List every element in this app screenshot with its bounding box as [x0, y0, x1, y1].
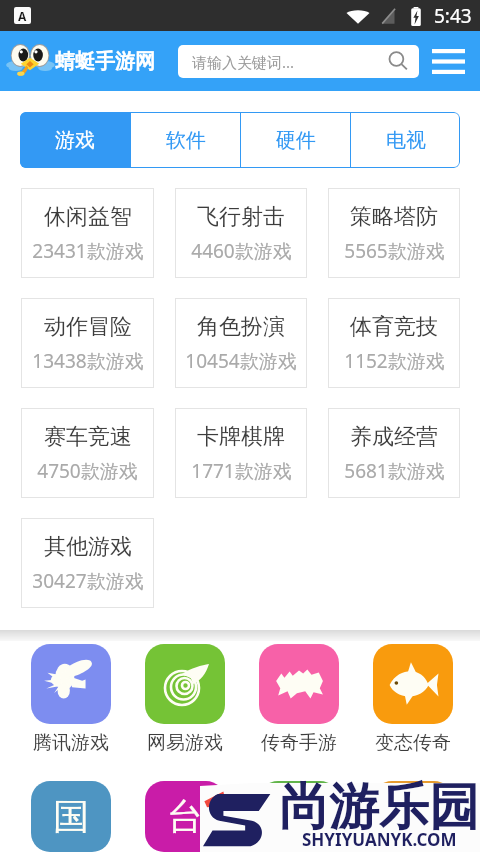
button[interactable]: 软件 — [131, 112, 240, 168]
button[interactable]: 休闲益智 — [21, 188, 154, 278]
staticText: 国 — [53, 794, 89, 839]
staticText: 角色扮演 — [197, 313, 285, 341]
staticText: 台 — [167, 794, 203, 839]
staticText: 30427款游戏 — [32, 568, 144, 594]
staticText: 硬件 — [276, 128, 316, 153]
staticText: 养成经营 — [350, 423, 438, 451]
button[interactable]: 变态传奇 — [373, 644, 453, 755]
button[interactable]: 角色扮演 — [175, 298, 307, 388]
button[interactable]: 动作冒险 — [21, 298, 154, 388]
button[interactable]: 养成经营 — [328, 408, 460, 498]
staticText: 体育竞技 — [350, 313, 438, 341]
button[interactable]: 国 — [31, 781, 111, 852]
staticText: 23431款游戏 — [32, 238, 144, 264]
button[interactable]: 游戏 — [20, 112, 130, 168]
staticText: 13438款游戏 — [32, 348, 144, 374]
staticText: 4750款游戏 — [37, 458, 138, 484]
staticText: 5:43 — [434, 3, 472, 29]
staticText: 尚游乐园 — [279, 776, 479, 839]
button[interactable]: 请输入关键词... — [178, 45, 419, 78]
staticText: 蜻蜓手游网 — [55, 49, 155, 74]
staticText: SHYIYUANYK.COM — [302, 828, 457, 851]
staticText: 1771款游戏 — [191, 458, 292, 484]
staticText: 其他游戏 — [44, 533, 132, 561]
staticText: 电视 — [386, 128, 426, 153]
button[interactable]: 体育竞技 — [328, 298, 460, 388]
button[interactable]: Menu — [424, 37, 472, 85]
staticText: 动作冒险 — [44, 313, 132, 341]
button[interactable]: 策略塔防 — [328, 188, 460, 278]
button[interactable]: 日 — [259, 781, 339, 852]
staticText: 策略塔防 — [350, 203, 438, 231]
button[interactable]: 硬件 — [241, 112, 350, 168]
staticText: 请输入关键词... — [192, 52, 295, 72]
button[interactable]: 其他游戏 — [21, 518, 154, 608]
staticText: 10454款游戏 — [185, 348, 297, 374]
staticText: 5681款游戏 — [344, 458, 445, 484]
staticText: 休闲益智 — [44, 203, 132, 231]
button[interactable]: 卡牌棋牌 — [175, 408, 307, 498]
button[interactable]: 赛车竞速 — [21, 408, 154, 498]
staticText: 飞行射击 — [197, 203, 285, 231]
button[interactable]: 飞行射击 — [175, 188, 307, 278]
button[interactable]: 欧 — [373, 781, 453, 852]
staticText: 卡牌棋牌 — [197, 423, 285, 451]
staticText: A — [18, 8, 27, 24]
staticText: 软件 — [166, 128, 206, 153]
button[interactable]: 台 — [145, 781, 225, 852]
button[interactable]: 传奇手游 — [259, 644, 339, 755]
staticText: 游戏 — [55, 128, 95, 153]
staticText: 传奇手游 — [261, 731, 337, 755]
staticText: 变态传奇 — [375, 731, 451, 755]
button[interactable]: 腾讯游戏 — [31, 644, 111, 755]
button[interactable]: 网易游戏 — [145, 644, 225, 755]
staticText: 5565款游戏 — [344, 238, 445, 264]
staticText: 欧 — [395, 794, 431, 839]
staticText: 赛车竞速 — [44, 423, 132, 451]
staticText: 日 — [281, 794, 317, 839]
staticText: 腾讯游戏 — [33, 731, 109, 755]
staticText: 4460款游戏 — [191, 238, 292, 264]
staticText: 网易游戏 — [147, 731, 223, 755]
staticText: 1152款游戏 — [344, 348, 445, 374]
button[interactable]: 电视 — [351, 112, 460, 168]
